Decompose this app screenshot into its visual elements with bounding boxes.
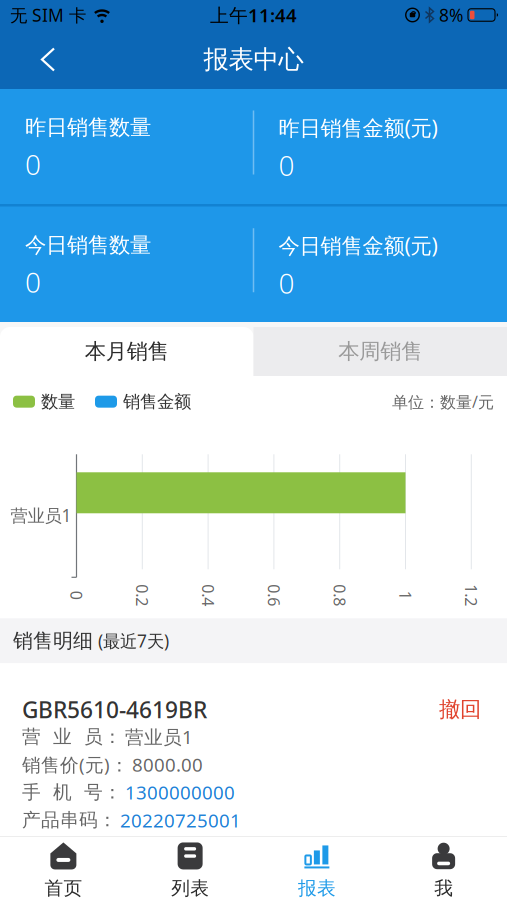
- staticText: 我: [434, 877, 453, 900]
- staticText: (最近7天): [98, 629, 169, 652]
- staticText: 0: [72, 585, 81, 606]
- staticText: 8%: [439, 3, 463, 26]
- staticText: 手 机 号：: [22, 781, 122, 804]
- staticText: 0.4: [197, 585, 219, 606]
- staticText: 昨日销售金额(元): [278, 113, 437, 141]
- staticText: 0: [278, 264, 294, 301]
- staticText: 今日销售金额(元): [278, 231, 437, 259]
- staticText: 销售价(元)：: [22, 752, 129, 777]
- staticText: 报表中心: [203, 44, 303, 75]
- staticText: 营业员1: [10, 504, 71, 527]
- staticText: 撤回: [439, 696, 481, 722]
- button[interactable]: 报表: [253, 837, 380, 900]
- button[interactable]: 我: [380, 837, 507, 900]
- staticText: 单位：数量/元: [392, 391, 494, 412]
- staticText: 0.8: [329, 585, 351, 606]
- staticText: 报表: [298, 877, 336, 900]
- staticText: 营业员1: [125, 724, 193, 749]
- staticText: 0.2: [131, 585, 153, 606]
- staticText: 本月销售: [85, 338, 169, 365]
- button[interactable]: 撤回: [439, 696, 481, 722]
- button[interactable]: [0, 32, 58, 86]
- staticText: 1.2: [460, 585, 482, 606]
- staticText: 上午11:44: [210, 3, 297, 27]
- button[interactable]: 列表: [127, 837, 254, 900]
- staticText: 20220725001: [120, 808, 241, 833]
- staticText: 销售明细: [13, 628, 93, 653]
- staticText: 本周销售: [338, 338, 422, 365]
- staticText: 1: [401, 585, 410, 606]
- staticText: 无 SIM 卡: [10, 3, 86, 26]
- button[interactable]: 首页: [0, 837, 127, 900]
- staticText: 8000.00: [132, 752, 203, 777]
- button[interactable]: 本周销售: [253, 327, 507, 376]
- staticText: 昨日销售数量: [25, 114, 151, 140]
- staticText: 产品串码：: [22, 809, 117, 832]
- staticText: 首页: [44, 877, 82, 900]
- staticText: 0: [25, 145, 41, 183]
- staticText: 销售金额: [123, 391, 191, 412]
- staticText: 0: [278, 147, 294, 184]
- button[interactable]: 本月销售: [0, 327, 253, 376]
- staticText: 今日销售数量: [25, 232, 151, 258]
- staticText: 0: [25, 263, 41, 300]
- staticText: GBR5610-4619BR: [22, 694, 207, 724]
- staticText: 数量: [41, 391, 75, 412]
- staticText: 0.6: [263, 585, 285, 606]
- staticText: 列表: [171, 877, 209, 900]
- staticText: 1300000000: [125, 780, 235, 805]
- staticText: 营 业 员：: [22, 725, 122, 748]
